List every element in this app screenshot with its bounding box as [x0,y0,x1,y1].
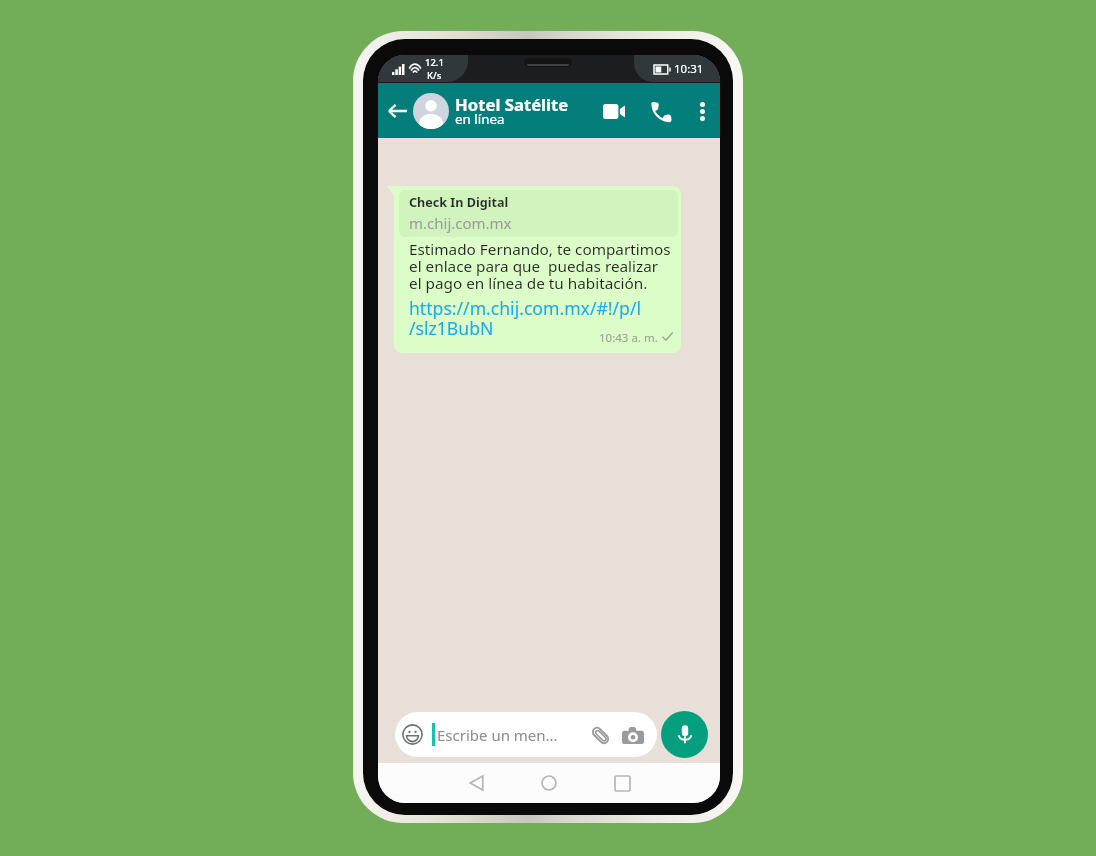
staticText: 12.1 [425,56,444,69]
button[interactable]: Back [456,763,496,803]
staticText: 10:31 [674,61,704,77]
staticText: K/s [427,69,442,82]
staticText: Escribe un men... [437,725,558,745]
button[interactable]: More options [687,96,717,126]
staticText: m.chij.com.mx [409,213,512,233]
staticText: en línea [455,110,505,128]
button[interactable]: Call [643,94,677,128]
staticText: 10:43 a. m. [599,330,658,342]
staticText: Hotel Satélite [455,93,569,116]
button[interactable]: Video call [597,94,631,128]
button[interactable]: Home [529,763,569,803]
button[interactable]: Contact photo [413,93,449,129]
button[interactable]: Check In Digital [394,186,681,353]
staticText: https://m.chij.com.mx/#!/p/l /slz1BubN [409,296,642,341]
button[interactable]: Recents [602,763,642,803]
button[interactable]: Voice message [661,711,708,758]
button[interactable]: Escribe un men... [395,712,657,757]
button[interactable]: Attach [588,723,612,747]
staticText: Estimado Fernando, te compartimos el enl… [409,239,671,293]
staticText: Check In Digital [409,194,509,211]
button[interactable]: Back [382,96,412,126]
button[interactable]: Camera [621,723,645,747]
